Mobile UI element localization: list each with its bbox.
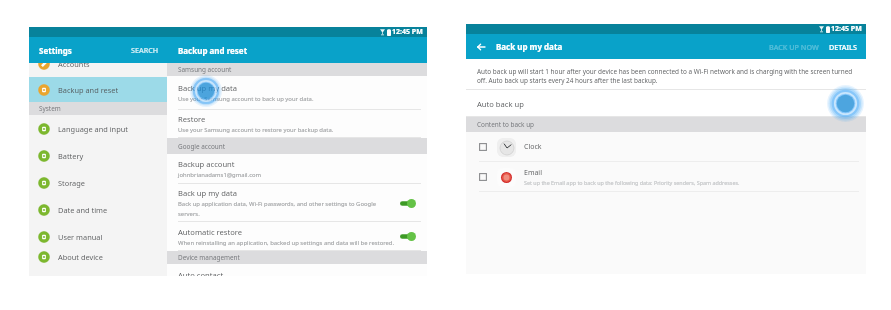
button[interactable]: Clock: [466, 132, 866, 162]
staticText: Auto contact: [178, 270, 224, 276]
button[interactable]: Back: [466, 34, 496, 59]
button[interactable]: Back up my data: [167, 76, 427, 110]
staticText: User manual: [58, 232, 103, 242]
staticText: Language and input: [58, 124, 128, 134]
staticText: Set up the Email app to back up the foll…: [524, 179, 740, 186]
staticText: Back up my data: [496, 41, 563, 52]
staticText: Google account: [178, 142, 226, 151]
staticText: 12:45 PM: [392, 27, 423, 37]
button[interactable]: Accounts: [29, 63, 167, 77]
button[interactable]: Auto contact: [167, 264, 427, 276]
staticText: Back up my data: [178, 188, 238, 198]
staticText: Storage: [58, 178, 85, 188]
staticText: Device management: [178, 253, 240, 262]
staticText: Battery: [58, 151, 84, 161]
staticText: Date and time: [58, 205, 108, 215]
button[interactable]: Storage: [29, 169, 167, 196]
button[interactable]: Battery: [29, 142, 167, 169]
button[interactable]: Date and time: [29, 196, 167, 223]
staticText: servers.: [178, 210, 200, 218]
staticText: Settings: [39, 45, 72, 56]
staticText: 12:45 PM: [831, 24, 862, 34]
staticText: Backup account: [178, 159, 235, 169]
staticText: Automatic restore: [178, 227, 243, 237]
staticText: Clock: [524, 142, 542, 152]
staticText: Accounts: [58, 63, 90, 69]
staticText: Back up my data: [178, 83, 238, 93]
button[interactable]: Back up my data: [167, 184, 427, 222]
staticText: About device: [58, 252, 103, 262]
button[interactable]: BACK UP NOW: [769, 42, 819, 52]
button[interactable]: Automatic restore: [167, 222, 427, 251]
staticText: Back up application data, Wi-Fi password…: [178, 200, 376, 208]
staticText: System: [39, 104, 61, 113]
staticText: Use your Samsung account to restore your…: [178, 126, 334, 134]
staticText: Auto back up: [477, 99, 524, 109]
button[interactable]: Language and input: [29, 115, 167, 142]
button[interactable]: Auto back up: [466, 90, 866, 117]
staticText: Auto back up will start 1 hour after you…: [477, 67, 856, 85]
staticText: Backup and reset: [58, 85, 119, 95]
staticText: Content to back up: [477, 120, 535, 129]
button[interactable]: Backup and reset: [29, 77, 167, 102]
staticText: Restore: [178, 114, 206, 124]
button[interactable]: About device: [29, 250, 167, 263]
staticText: johnbrianadams1@gmail.com: [178, 171, 262, 179]
staticText: Email: [524, 168, 542, 178]
staticText: Use your Samsung account to back up your…: [178, 95, 314, 103]
button[interactable]: Email: [466, 162, 866, 192]
button[interactable]: Restore: [167, 110, 427, 138]
button[interactable]: Backup account: [167, 154, 427, 184]
button[interactable]: SEARCH: [131, 45, 167, 55]
staticText: When reinstalling an application, backed…: [178, 239, 395, 247]
button[interactable]: DETAILS: [829, 42, 866, 52]
button[interactable]: User manual: [29, 223, 167, 250]
staticText: Backup and reset: [178, 45, 248, 56]
staticText: Samsung account: [178, 65, 232, 74]
